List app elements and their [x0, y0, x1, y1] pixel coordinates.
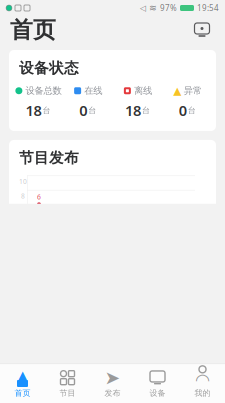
staticText: 10: [19, 177, 27, 186]
staticText: 设备状态: [19, 59, 79, 77]
staticText: ▲: [18, 368, 27, 382]
staticText: ◠: [195, 370, 210, 389]
staticText: 台: [42, 105, 50, 115]
staticText: ◁: [140, 3, 146, 13]
staticText: 节目发布: [19, 149, 79, 167]
staticText: 在线: [84, 85, 102, 96]
staticText: 台: [142, 105, 150, 115]
staticText: 发布: [104, 388, 120, 398]
button[interactable]: 节目: [45, 364, 90, 403]
staticText: 台: [188, 105, 196, 115]
staticText: ≋: [149, 3, 157, 13]
staticText: 8: [21, 191, 25, 200]
staticText: ➤: [104, 367, 120, 388]
staticText: 首页: [14, 388, 30, 398]
button[interactable]: ➤: [90, 364, 135, 403]
staticText: 44: [17, 387, 25, 396]
button[interactable]: Display: [187, 15, 217, 45]
staticText: 台: [88, 105, 96, 115]
staticText: 设备: [149, 388, 165, 398]
button[interactable]: ◠: [180, 364, 225, 403]
staticText: ▲: [173, 85, 181, 97]
button[interactable]: 设备: [135, 364, 180, 403]
staticText: 19:54: [197, 3, 219, 13]
staticText: 0: [79, 100, 87, 120]
staticText: 0: [179, 100, 187, 120]
button[interactable]: ▲: [0, 364, 45, 403]
staticText: 异常: [184, 85, 202, 96]
staticText: 18: [25, 100, 41, 120]
staticText: 66: [17, 368, 25, 377]
staticText: 我的: [194, 388, 210, 398]
staticText: 18: [125, 100, 141, 120]
staticText: 97%: [160, 3, 177, 13]
staticText: 设备总数: [25, 85, 61, 96]
staticText: 节目: [59, 388, 75, 398]
staticText: 首页: [10, 16, 56, 44]
staticText: 离线: [134, 85, 152, 96]
staticText: 6: [37, 192, 41, 201]
